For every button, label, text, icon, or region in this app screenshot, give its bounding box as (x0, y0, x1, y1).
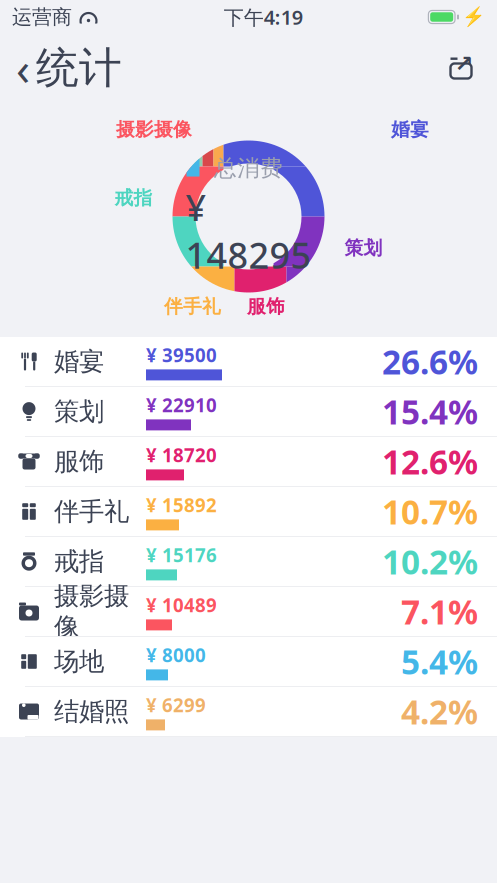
staticText: 10.7% (382, 489, 478, 534)
staticText: 下午4:19 (224, 4, 303, 30)
staticText: 策划 (344, 236, 382, 259)
staticText: ¥ 22910 (146, 393, 217, 417)
staticText: 婚宴 (391, 118, 429, 141)
staticText: 戒指 (54, 546, 104, 577)
staticText: 5.4% (401, 639, 478, 684)
staticText: 26.6% (382, 339, 478, 384)
button[interactable]: 戒指 (0, 537, 497, 587)
staticText: 摄影摄像 (116, 118, 192, 141)
staticText: ¥ 18720 (146, 443, 217, 467)
button[interactable]: 分享 (439, 46, 483, 90)
staticText: 运营商 (12, 5, 72, 29)
button[interactable]: 摄影摄像 (0, 587, 497, 637)
staticText: 15.4% (382, 389, 478, 434)
staticText: 场地 (54, 646, 104, 677)
staticText: 婚宴 (54, 346, 104, 377)
staticText: 摄影摄像 (54, 580, 129, 643)
staticText: 结婚照 (54, 696, 129, 727)
staticText: ↗ (454, 51, 473, 77)
staticText: 总消费 (214, 154, 283, 182)
staticText: 4.2% (401, 689, 478, 734)
staticText: 10.2% (382, 539, 478, 584)
staticText: 伴手礼 (54, 496, 129, 527)
staticText: 戒指 (114, 186, 152, 209)
staticText: 服饰 (54, 446, 104, 477)
staticText: ¥ 8000 (146, 643, 206, 667)
button[interactable]: 婚宴 (0, 337, 497, 387)
staticText: 伴手礼 (164, 295, 221, 318)
staticText: ¥ 15176 (146, 543, 217, 567)
button[interactable]: 服饰 (0, 437, 497, 487)
button[interactable]: 策划 (0, 387, 497, 437)
staticText: 策划 (54, 396, 104, 427)
staticText: ¥ 10489 (146, 593, 217, 617)
staticText: 7.1% (401, 589, 478, 634)
staticText: 12.6% (382, 439, 478, 484)
button[interactable]: 场地 (0, 637, 497, 687)
staticText: ‹ (16, 38, 30, 98)
button[interactable]: ‹ (0, 34, 134, 102)
staticText: ¥ 15892 (146, 493, 217, 517)
staticText: ¥ 6299 (146, 693, 206, 717)
button[interactable]: 伴手礼 (0, 487, 497, 537)
staticText: ¥ 39500 (146, 343, 217, 367)
staticText: 服饰 (247, 295, 285, 318)
staticText: ¥ 148295 (185, 183, 311, 279)
button[interactable]: 结婚照 (0, 687, 497, 737)
staticText: 统计 (36, 42, 122, 94)
staticText: ⚡ (462, 6, 485, 28)
